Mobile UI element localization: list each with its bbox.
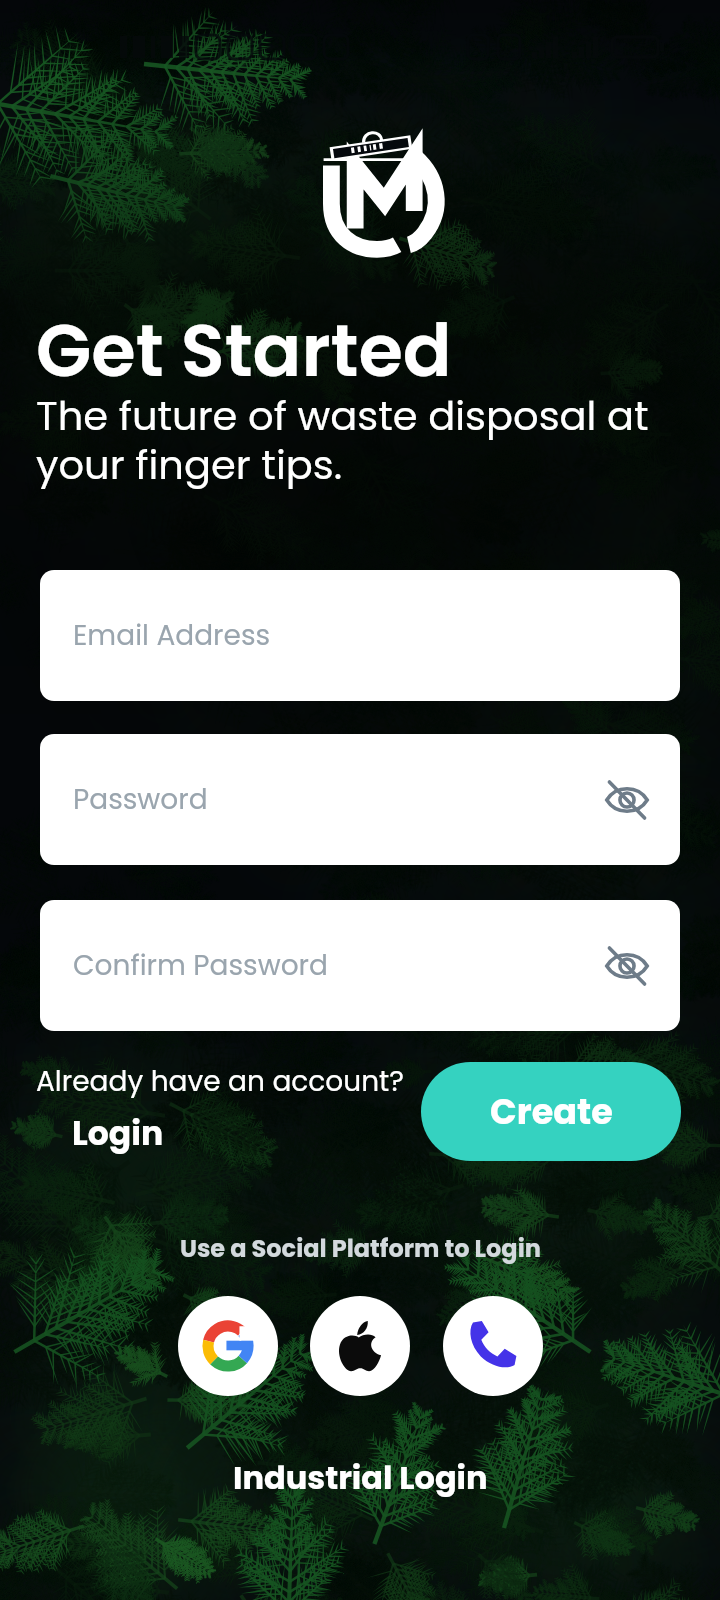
button[interactable]: Industrial Login	[233, 1455, 488, 1500]
button[interactable]: Email Address	[40, 570, 680, 701]
button[interactable]: Password	[40, 734, 680, 865]
button[interactable]: Sign in with Apple	[310, 1296, 410, 1396]
staticText: Password	[73, 780, 208, 819]
staticText: Already have an account?	[36, 1062, 404, 1101]
staticText: Use a Social Platform to Login	[180, 1232, 541, 1266]
staticText: Industrial Login	[233, 1455, 488, 1500]
button[interactable]: Sign in with Google	[178, 1296, 278, 1396]
staticText: Email Address	[73, 616, 271, 655]
staticText: The future of waste disposal at your fin…	[36, 388, 649, 493]
button[interactable]: Sign in with phone number	[443, 1296, 543, 1396]
staticText: Create	[490, 1087, 613, 1136]
staticText: Get Started	[36, 300, 452, 401]
button[interactable]: Create	[421, 1062, 681, 1161]
button[interactable]: Toggle password visibility	[602, 775, 652, 825]
button[interactable]: Login	[72, 1110, 164, 1156]
button[interactable]: Toggle password visibility	[602, 941, 652, 991]
staticText: Login	[72, 1110, 164, 1156]
button[interactable]: Confirm Password	[40, 900, 680, 1031]
staticText: Confirm Password	[73, 946, 328, 985]
